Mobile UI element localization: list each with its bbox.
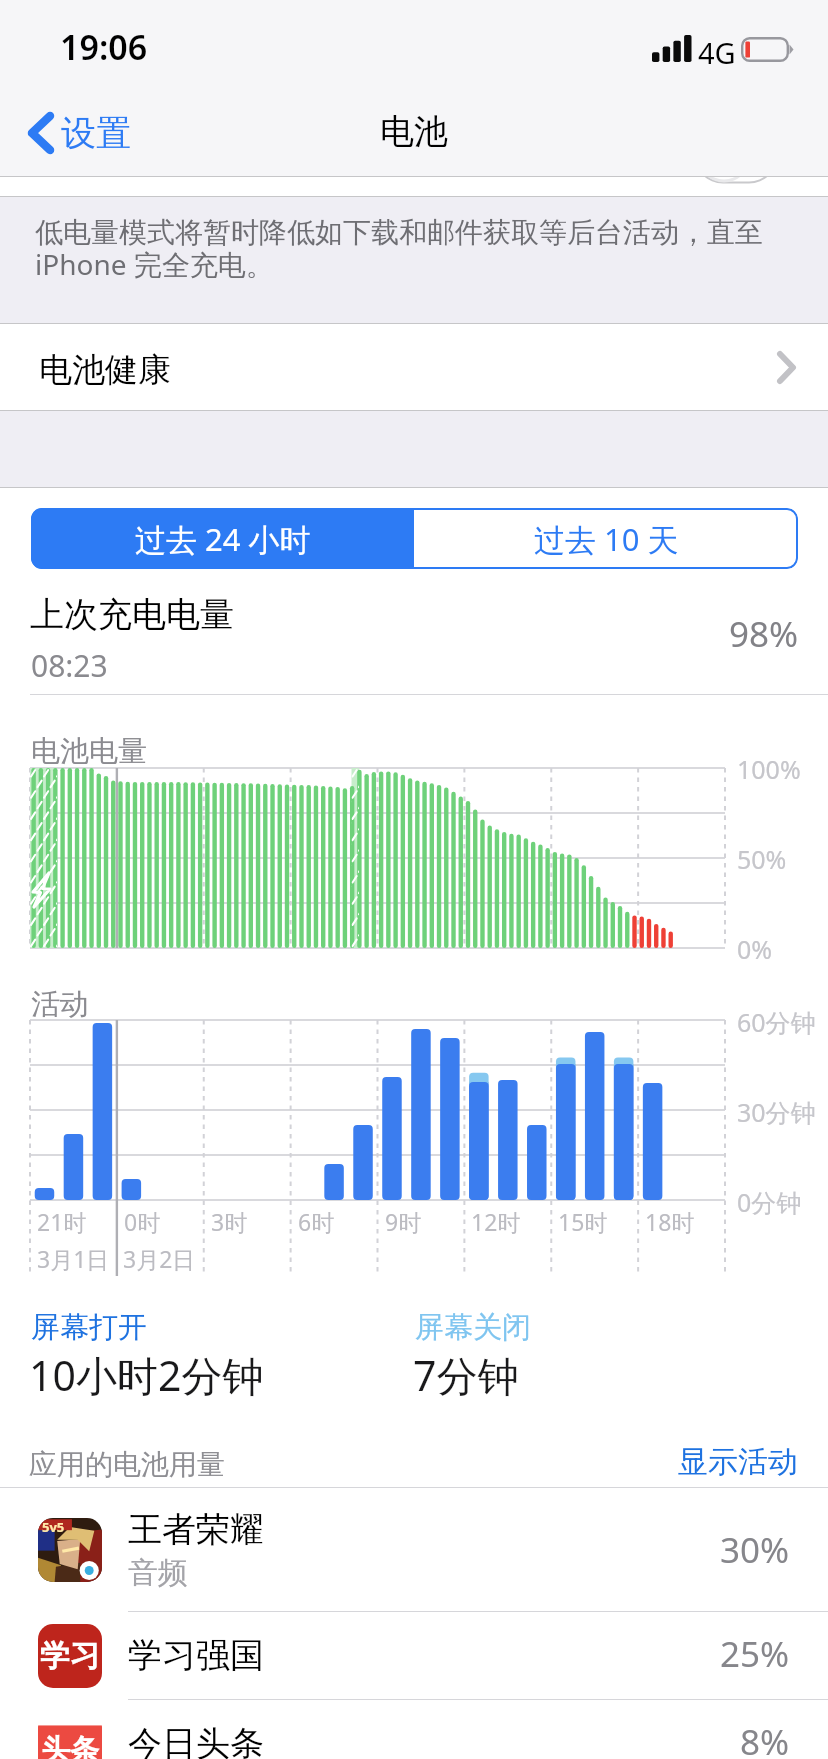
staticText: 电池健康: [39, 349, 171, 391]
staticText: 屏幕关闭: [415, 1309, 531, 1346]
staticText: 过去 10 天: [534, 518, 679, 560]
staticText: 0时: [124, 1206, 161, 1237]
button[interactable]: 显示活动: [708, 1420, 828, 1458]
staticText: 王者荣耀: [128, 1508, 264, 1551]
staticText: 100%: [737, 752, 801, 786]
staticText: 30分钟: [737, 1095, 816, 1129]
staticText: 3月1日: [37, 1243, 110, 1274]
button[interactable]: 头条: [0, 1700, 828, 1759]
staticText: 18时: [645, 1206, 695, 1237]
button[interactable]: 学习: [0, 1612, 828, 1700]
button[interactable]: 过去 24 小时: [31, 508, 414, 569]
staticText: 30%: [720, 1526, 790, 1574]
staticText: 活动: [31, 986, 89, 1023]
staticText: 98%: [729, 610, 799, 658]
staticText: 10小时2分钟: [29, 1347, 264, 1403]
button[interactable]: 5v5: [0, 1488, 828, 1612]
staticText: 3月2日: [123, 1243, 196, 1274]
staticText: 学习强国: [128, 1634, 264, 1677]
staticText: 今日头条: [128, 1722, 264, 1759]
staticText: 9时: [385, 1206, 422, 1237]
staticText: 08:23: [31, 645, 108, 686]
staticText: 上次充电电量: [30, 593, 234, 636]
button[interactable]: 过去 10 天: [414, 508, 798, 569]
staticText: 电池: [380, 110, 448, 153]
staticText: 设置: [61, 111, 131, 155]
staticText: 21时: [37, 1206, 87, 1237]
staticText: 低电量模式将暂时降低如下载和邮件获取等后台活动，直至 iPhone 完全充电。: [35, 215, 763, 283]
staticText: 3时: [211, 1206, 248, 1237]
staticText: 0%: [737, 932, 773, 966]
staticText: 50%: [737, 842, 787, 876]
staticText: 19:06: [60, 24, 148, 70]
staticText: 12时: [471, 1206, 521, 1237]
staticText: 头条: [41, 1732, 99, 1759]
staticText: 过去 24 小时: [135, 518, 311, 560]
staticText: 8%: [740, 1718, 790, 1759]
staticText: 5v5: [42, 1518, 65, 1536]
button[interactable]: 设置: [22, 103, 137, 163]
staticText: 15时: [558, 1206, 608, 1237]
staticText: 电池电量: [31, 733, 147, 770]
staticText: 学习: [40, 1637, 100, 1675]
staticText: 4G: [698, 33, 736, 72]
staticText: 屏幕打开: [31, 1309, 147, 1346]
button[interactable]: 电池健康: [0, 324, 828, 411]
staticText: 60分钟: [737, 1005, 816, 1039]
staticText: 音频: [128, 1554, 188, 1592]
staticText: 7分钟: [413, 1347, 519, 1403]
staticText: 应用的电池用量: [29, 1447, 225, 1482]
staticText: 0分钟: [737, 1185, 802, 1219]
staticText: 25%: [720, 1630, 790, 1678]
staticText: 6时: [298, 1206, 335, 1237]
